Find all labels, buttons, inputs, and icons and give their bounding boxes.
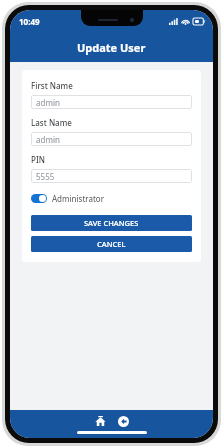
button[interactable]: SAVE CHANGES — [31, 215, 192, 231]
button[interactable]: Back — [115, 413, 132, 430]
staticText: Administrator — [52, 193, 104, 204]
button[interactable]: Home — [92, 413, 109, 430]
staticText: 5555 — [36, 171, 55, 182]
button[interactable]: 5555 — [31, 169, 192, 183]
staticText: Update User — [77, 40, 146, 55]
button[interactable]: Administrator — [31, 192, 104, 205]
staticText: PIN — [31, 154, 45, 165]
staticText: Last Name — [31, 117, 72, 128]
staticText: admin — [36, 134, 60, 145]
staticText: 10:49 — [19, 16, 40, 27]
staticText: admin — [36, 97, 60, 108]
staticText: SAVE CHANGES — [84, 218, 139, 228]
staticText: First Name — [31, 80, 73, 91]
button[interactable]: admin — [31, 132, 192, 146]
button[interactable]: CANCEL — [31, 236, 192, 252]
button[interactable]: admin — [31, 95, 192, 109]
staticText: CANCEL — [97, 239, 126, 249]
